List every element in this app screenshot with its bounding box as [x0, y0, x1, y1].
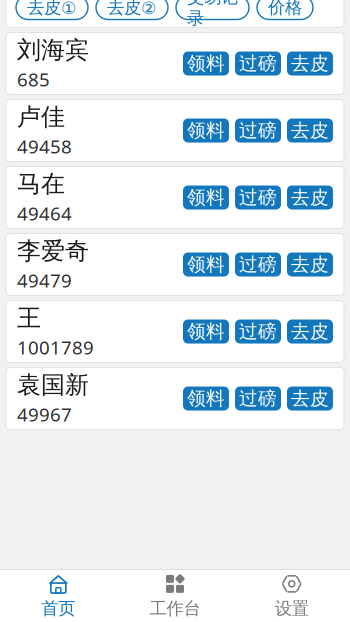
- button[interactable]: 过磅: [235, 118, 281, 142]
- staticText: 领料: [187, 253, 225, 276]
- staticText: 工作台: [149, 598, 200, 619]
- staticText: 领料: [187, 52, 225, 75]
- staticText: 过磅: [239, 253, 277, 276]
- staticText: 去皮: [291, 387, 329, 410]
- staticText: 1001789: [17, 335, 94, 360]
- staticText: 去皮①: [27, 0, 77, 18]
- staticText: 去皮: [291, 52, 329, 75]
- button[interactable]: 领料: [183, 386, 229, 410]
- staticText: 李爱奇: [17, 236, 89, 266]
- button[interactable]: 去皮: [287, 386, 333, 410]
- staticText: 49967: [17, 402, 72, 427]
- staticText: 去皮: [291, 186, 329, 209]
- button[interactable]: 设置: [233, 571, 350, 621]
- staticText: 价格: [268, 0, 302, 18]
- button[interactable]: 领料: [183, 319, 229, 343]
- button[interactable]: 袁国新: [6, 367, 344, 429]
- button[interactable]: 交易记录: [176, 0, 249, 19]
- button[interactable]: 去皮: [287, 252, 333, 276]
- button[interactable]: 去皮②: [96, 0, 168, 19]
- staticText: 交易记录: [187, 0, 238, 29]
- staticText: 685: [17, 67, 50, 92]
- button[interactable]: 过磅: [235, 51, 281, 75]
- staticText: 49458: [17, 134, 72, 159]
- button[interactable]: 去皮: [287, 319, 333, 343]
- button[interactable]: 王: [6, 300, 344, 362]
- staticText: 刘海宾: [17, 35, 89, 65]
- button[interactable]: 领料: [183, 185, 229, 209]
- staticText: 过磅: [239, 186, 277, 209]
- button[interactable]: 去皮①: [16, 0, 88, 19]
- button[interactable]: 领料: [183, 252, 229, 276]
- staticText: 卢佳: [17, 102, 65, 132]
- staticText: 去皮: [291, 253, 329, 276]
- button[interactable]: 去皮: [287, 118, 333, 142]
- staticText: 领料: [187, 186, 225, 209]
- staticText: 过磅: [239, 387, 277, 410]
- button[interactable]: 首页: [0, 571, 117, 621]
- button[interactable]: 过磅: [235, 252, 281, 276]
- button[interactable]: 李爱奇: [6, 233, 344, 295]
- staticText: 马在: [17, 169, 65, 199]
- button[interactable]: 过磅: [235, 386, 281, 410]
- staticText: 领料: [187, 119, 225, 142]
- staticText: 49479: [17, 268, 72, 293]
- staticText: 过磅: [239, 320, 277, 343]
- staticText: 去皮: [291, 320, 329, 343]
- button[interactable]: 领料: [183, 118, 229, 142]
- staticText: 首页: [41, 598, 75, 619]
- staticText: 去皮②: [107, 0, 157, 18]
- button[interactable]: 价格: [257, 0, 313, 19]
- staticText: 过磅: [239, 119, 277, 142]
- button[interactable]: 去皮: [287, 185, 333, 209]
- button[interactable]: 过磅: [235, 319, 281, 343]
- staticText: 领料: [187, 387, 225, 410]
- staticText: 49464: [17, 201, 72, 226]
- staticText: 王: [17, 303, 41, 333]
- button[interactable]: 刘海宾: [6, 32, 344, 94]
- staticText: 领料: [187, 320, 225, 343]
- staticText: 过磅: [239, 52, 277, 75]
- staticText: 设置: [275, 598, 309, 619]
- button[interactable]: 卢佳: [6, 99, 344, 161]
- staticText: 袁国新: [17, 370, 89, 400]
- button[interactable]: 去皮: [287, 51, 333, 75]
- button[interactable]: 马在: [6, 166, 344, 228]
- button[interactable]: 领料: [183, 51, 229, 75]
- button[interactable]: 过磅: [235, 185, 281, 209]
- staticText: 去皮: [291, 119, 329, 142]
- button[interactable]: 工作台: [117, 571, 233, 621]
